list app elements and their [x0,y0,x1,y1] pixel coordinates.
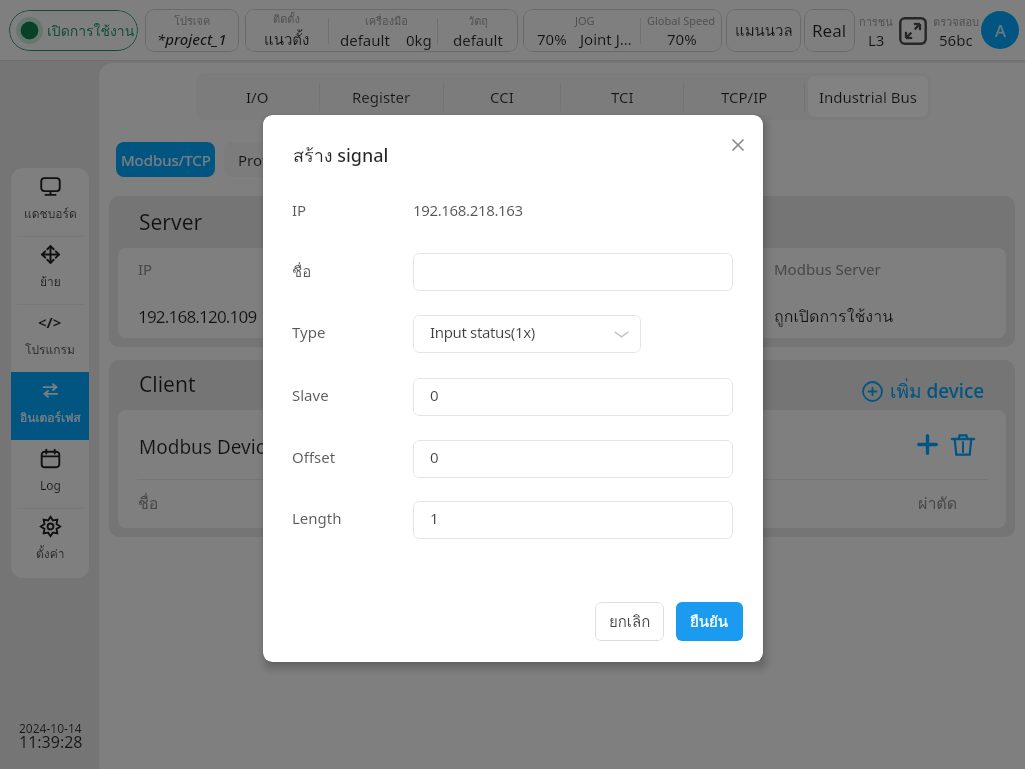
button[interactable]: ยกเลิก [595,602,664,641]
staticText: Offset [292,447,336,467]
button[interactable]: Log [11,440,89,508]
staticText: I/O [246,87,269,107]
staticText: สร้าง signal [293,141,389,170]
button[interactable]: Add signal [916,433,939,456]
button[interactable]: Industrial Bus [808,76,928,117]
button[interactable]: TCI [564,76,680,117]
staticText: อินเตอร์เฟส [20,408,81,427]
staticText: 0 [430,385,439,405]
button[interactable]: Real [804,9,855,52]
button[interactable]: CCI [447,76,557,117]
button[interactable]: A [981,11,1019,49]
button[interactable]: 0 [413,378,733,416]
staticText: แมนนวล [735,19,793,43]
staticText: 192.168.120.109 [138,305,257,328]
button[interactable]: ติดตั้ง [245,9,518,52]
staticText: Length [292,508,342,528]
staticText: *project_1 [157,29,227,49]
staticText: ชื่อ [292,260,312,280]
staticText: เปิดการใช้งาน [47,20,135,42]
button[interactable]: Expand [899,17,927,45]
staticText: Input status(1x) [430,322,535,342]
staticText: เพิ่ม device [890,376,985,406]
button[interactable]: </> [11,304,89,372]
button[interactable]: Register [323,76,440,117]
staticText: ผ่าตัด [918,491,958,512]
staticText: วัตถุ [468,12,488,29]
staticText: 1 [430,508,439,528]
staticText: TCP/IP [721,87,768,107]
staticText: Real [812,19,847,42]
staticText: Global Speed [647,13,716,28]
staticText: IP [138,259,153,279]
button[interactable]: Delete device [951,433,975,457]
button[interactable]: 1 [413,501,733,539]
button[interactable]: Input status(1x) [413,315,641,353]
staticText: ถูกเปิดการใช้งาน [774,304,894,328]
staticText: ติดตั้ง [273,10,300,27]
staticText: 70% [667,29,697,49]
button[interactable]: เพิ่ม device [859,375,988,407]
button[interactable]: อินเตอร์เฟส [11,372,89,440]
staticText: ตั้งค่า [36,544,65,563]
staticText: A [995,19,1006,42]
staticText: Slave [292,385,329,405]
staticText: Profinet [238,150,295,170]
staticText: Client [139,370,196,399]
staticText: Industrial Bus [819,87,917,107]
button[interactable]: ย้าย [11,236,89,304]
staticText: Modbus/TCP [121,150,211,170]
staticText: default [453,30,503,50]
staticText: CCI [490,87,514,107]
staticText: 192.168.218.163 [413,200,523,220]
button[interactable]: โปรเจค [145,9,239,52]
staticText: Modbus Server [774,259,881,279]
staticText: IP [292,200,307,220]
button[interactable]: แมนนวล [726,9,801,52]
button[interactable]: การชน [856,12,896,50]
staticText: 70% [537,29,567,49]
staticText: แนวตั้ง [264,28,310,52]
staticText: 0 [430,447,439,467]
button[interactable]: 0 [413,440,733,478]
button[interactable]: JOG [523,9,722,52]
staticText: โปรเจค [174,12,211,29]
button[interactable]: แดชบอร์ด [11,168,89,236]
staticText: ยกเลิก [609,610,651,634]
staticText: 56bc [939,30,973,50]
staticText: 2024-10-14 [19,720,82,736]
staticText: การชน [859,13,893,30]
staticText: ยืนยัน [690,610,729,634]
staticText: </> [38,312,62,332]
button[interactable]: Modbus/TCP [116,142,215,177]
staticText: Log [40,477,61,493]
staticText: เครื่องมือ [365,12,408,29]
staticText: 11:39:28 [19,731,83,753]
staticText: ย้าย [40,272,61,291]
staticText: L3 [868,30,885,50]
staticText: Type [292,322,326,342]
button[interactable]: ยืนยัน [676,602,743,641]
staticText: Joint J… [580,29,632,49]
button[interactable]: TCP/IP [687,76,801,117]
button[interactable]: Profinet [224,142,308,177]
staticText: ชื่อ [138,491,159,512]
staticText: Register [352,87,411,107]
staticText: 0kg [406,30,432,50]
staticText: JOG [575,13,595,28]
button[interactable]: เปิดการใช้งาน [9,10,138,51]
button[interactable]: Close [727,134,749,156]
button[interactable] [413,253,733,291]
button[interactable]: I/O [199,76,316,117]
staticText: แดชบอร์ด [24,204,77,223]
button[interactable]: ตั้งค่า [11,508,89,576]
staticText: ตรวจสอบ [933,13,979,30]
button[interactable]: ตรวจสอบ [930,12,982,50]
staticText: TCI [611,87,634,107]
staticText: Modbus Device 1 [139,434,292,460]
staticText: โปรแกรม [25,340,75,359]
staticText: default [340,30,390,50]
staticText: Server [139,208,203,237]
